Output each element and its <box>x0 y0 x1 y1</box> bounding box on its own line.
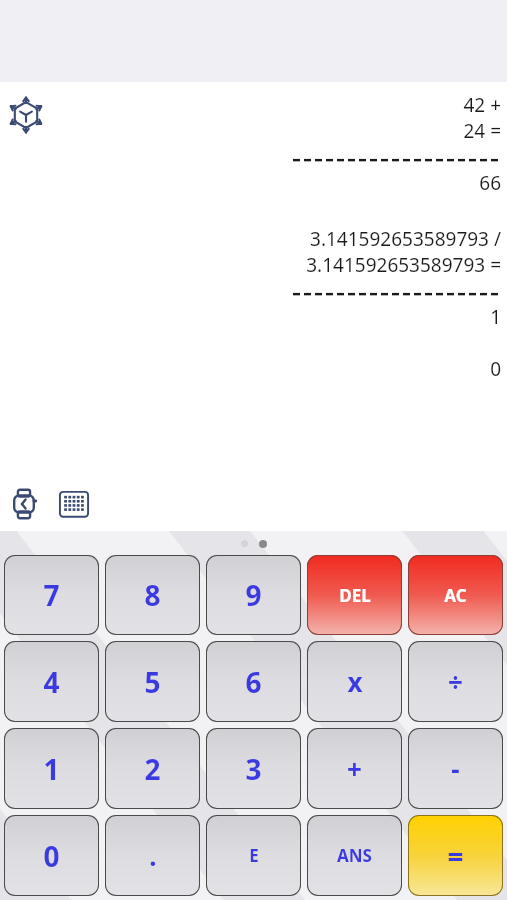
staticText: 9 <box>245 576 262 614</box>
staticText: 0 <box>43 837 60 875</box>
button[interactable]: x <box>307 641 402 722</box>
button[interactable]: = <box>408 815 503 896</box>
staticText: = <box>447 837 464 875</box>
button[interactable]: 0 <box>4 815 99 896</box>
staticText: 0 <box>490 356 501 382</box>
button[interactable]: 4 <box>4 641 99 722</box>
button[interactable]: + <box>307 728 402 809</box>
button[interactable]: ÷ <box>408 641 503 722</box>
button[interactable]: . <box>105 815 200 896</box>
button[interactable]: 2 <box>105 728 200 809</box>
button[interactable]: AC <box>408 555 503 635</box>
staticText: 24 = <box>463 118 501 144</box>
staticText: ANS <box>337 844 372 867</box>
staticText: 3.141592653589793 = <box>306 252 501 278</box>
staticText: 3.141592653589793 / <box>310 226 501 252</box>
staticText: . <box>149 838 157 873</box>
staticText: 4 <box>43 663 60 701</box>
staticText: DEL <box>339 584 371 607</box>
staticText: 8 <box>144 576 161 614</box>
staticText: 6 <box>245 663 262 701</box>
button[interactable]: - <box>408 728 503 809</box>
button[interactable]: DEL <box>307 555 402 635</box>
button[interactable]: 1 <box>4 728 99 809</box>
button[interactable]: 3 <box>206 728 301 809</box>
staticText: - <box>451 751 460 786</box>
button[interactable]: 5 <box>105 641 200 722</box>
staticText: 2 <box>144 750 161 788</box>
staticText: 1 <box>490 304 501 330</box>
staticText: 1 <box>43 750 60 788</box>
staticText: 42 + <box>463 92 501 118</box>
button[interactable]: E <box>206 815 301 896</box>
staticText: 7 <box>43 576 60 614</box>
staticText: 5 <box>144 663 161 701</box>
staticText: 66 <box>479 170 501 196</box>
button[interactable]: Expand display <box>4 93 48 137</box>
staticText: x <box>347 664 363 699</box>
button[interactable]: 7 <box>4 555 99 635</box>
staticText: 3 <box>245 750 262 788</box>
button[interactable]: 8 <box>105 555 200 635</box>
button[interactable]: Wear watch <box>4 484 44 524</box>
staticText: AC <box>444 584 467 607</box>
button[interactable]: 6 <box>206 641 301 722</box>
staticText: ÷ <box>448 664 463 699</box>
button[interactable]: Keyboard <box>52 482 96 526</box>
button[interactable]: ANS <box>307 815 402 896</box>
staticText: + <box>347 751 362 786</box>
button[interactable]: 9 <box>206 555 301 635</box>
staticText: E <box>249 844 259 867</box>
